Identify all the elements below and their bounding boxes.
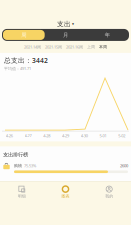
staticText: 4-26 xyxy=(6,133,13,138)
staticText: 年 xyxy=(105,32,110,38)
button[interactable]: 我的 xyxy=(87,181,131,206)
staticText: 上周 xyxy=(87,44,95,49)
button[interactable]: 购物 xyxy=(0,158,131,173)
staticText: 周 xyxy=(21,32,26,38)
staticText: 购物 xyxy=(14,163,22,168)
staticText: 4-28 xyxy=(43,133,50,138)
button[interactable]: 年 xyxy=(86,30,128,40)
staticText: 2600 xyxy=(120,163,128,168)
staticText: 本周 xyxy=(99,44,107,49)
staticText: 支出排行榜 xyxy=(3,151,28,158)
staticText: 5-02 xyxy=(118,133,125,138)
staticText: ▾ xyxy=(72,22,74,26)
staticText: 4-27 xyxy=(25,133,32,138)
staticText: 4-30 xyxy=(81,133,88,138)
button[interactable]: 支出 xyxy=(0,19,131,29)
staticText: 2021-15周 xyxy=(45,44,62,50)
staticText: 平均值：491.71 xyxy=(4,66,31,71)
staticText: 2021-16周 xyxy=(66,44,83,50)
button[interactable]: 月 xyxy=(45,30,86,40)
staticText: 我的 xyxy=(105,194,113,199)
staticText: 图表 xyxy=(61,194,69,199)
button[interactable]: 本周 xyxy=(99,44,107,49)
staticText: 总支出：3442 xyxy=(4,56,48,65)
button[interactable]: 2021-14周 xyxy=(24,44,41,50)
button[interactable]: 2021-16周 xyxy=(66,44,83,50)
button[interactable]: 明细 xyxy=(0,181,44,206)
staticText: 2021-14周 xyxy=(24,44,41,50)
button[interactable]: 周 xyxy=(3,30,45,40)
staticText: 4-29 xyxy=(62,133,69,138)
staticText: 5-01 xyxy=(99,133,106,138)
staticText: 75.53% xyxy=(24,163,36,168)
button[interactable]: 2021-15周 xyxy=(45,44,62,50)
button[interactable]: 上周 xyxy=(87,44,95,49)
staticText: 支出 xyxy=(57,20,71,28)
button[interactable]: 图表 xyxy=(44,181,87,206)
staticText: 明细 xyxy=(18,194,26,199)
staticText: 月 xyxy=(63,32,68,38)
